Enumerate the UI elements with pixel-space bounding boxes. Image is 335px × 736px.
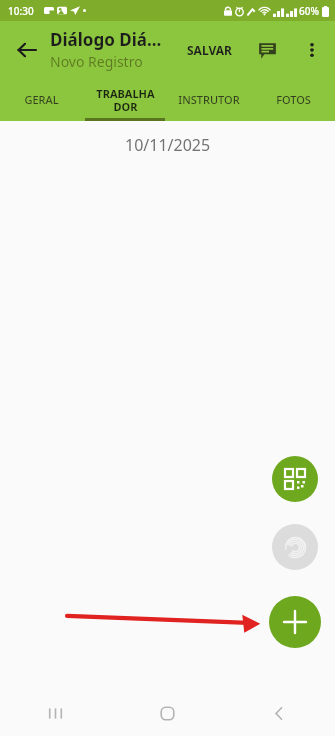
staticText: 60% xyxy=(299,4,319,18)
staticText: 10/11/2025 xyxy=(125,134,211,156)
button[interactable]: Scan QR code xyxy=(272,456,318,502)
staticText: FOTOS xyxy=(276,92,311,107)
button[interactable]: Add xyxy=(269,596,321,648)
button[interactable]: Recent apps xyxy=(0,690,111,736)
staticText: Diálogo Diá... xyxy=(50,28,162,51)
button[interactable]: Home xyxy=(111,690,223,736)
button[interactable]: Back xyxy=(6,30,46,70)
button[interactable]: Messages xyxy=(248,31,286,69)
staticText: 10:30 xyxy=(8,4,34,18)
button[interactable]: SALVAR xyxy=(182,36,237,64)
staticText: TRABALHA DOR xyxy=(96,86,155,114)
staticText: GERAL xyxy=(24,92,59,107)
button[interactable]: INSTRUTOR xyxy=(167,78,251,121)
button[interactable]: Back xyxy=(223,690,335,736)
button[interactable]: TRABALHA DOR xyxy=(83,78,167,121)
staticText: Novo Registro xyxy=(50,52,143,71)
button[interactable]: More options xyxy=(293,31,331,69)
button[interactable]: GERAL xyxy=(0,78,83,121)
staticText: INSTRUTOR xyxy=(178,92,240,107)
button[interactable]: FOTOS xyxy=(251,78,335,121)
button[interactable]: Fingerprint xyxy=(272,524,318,570)
staticText: SALVAR xyxy=(187,42,232,58)
